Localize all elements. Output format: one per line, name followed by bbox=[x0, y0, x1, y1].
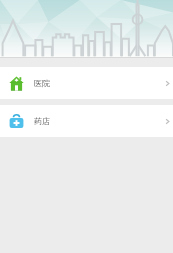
button[interactable]: 药店 bbox=[0, 105, 173, 137]
staticText: 医院 bbox=[34, 78, 50, 88]
button[interactable]: 医院 bbox=[0, 67, 173, 99]
staticText: 药店 bbox=[34, 116, 50, 126]
